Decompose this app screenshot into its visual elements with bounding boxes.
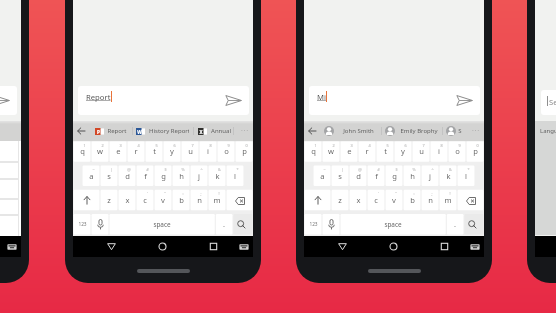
- staticText: n: [428, 195, 433, 205]
- button[interactable]: [446, 126, 456, 136]
- staticText: u: [419, 146, 424, 156]
- staticText: y: [170, 146, 174, 156]
- staticText: x: [356, 195, 361, 205]
- staticText: w: [328, 146, 334, 156]
- staticText: z: [107, 195, 111, 205]
- button[interactable]: Backspace: [235, 197, 245, 205]
- staticText: r: [134, 146, 138, 156]
- staticText: 4: [368, 143, 371, 148]
- staticText: k: [446, 171, 451, 181]
- staticText: l: [465, 171, 467, 181]
- staticText: a: [320, 171, 325, 181]
- button[interactable]: Hide keyboard: [470, 244, 480, 250]
- button[interactable]: W: [136, 128, 145, 135]
- staticText: q: [311, 146, 316, 156]
- staticText: 0: [245, 143, 248, 148]
- staticText: 6: [404, 143, 407, 148]
- staticText: ": [164, 191, 166, 196]
- button[interactable]: Backspace: [466, 197, 476, 205]
- button[interactable]: Recent apps: [440, 242, 449, 251]
- button[interactable]: Send: [0, 95, 10, 106]
- staticText: ": [395, 191, 397, 196]
- staticText: 1: [83, 143, 86, 148]
- button[interactable]: Back: [308, 127, 317, 135]
- button[interactable]: Back: [338, 243, 347, 250]
- staticText: u: [188, 146, 193, 156]
- staticText: 123: [309, 221, 318, 228]
- staticText: S: [458, 127, 462, 135]
- button[interactable]: Search: [541, 90, 556, 115]
- staticText: c: [143, 195, 147, 205]
- button[interactable]: Shift: [83, 196, 91, 205]
- staticText: :: [182, 191, 184, 196]
- button[interactable]: Hide keyboard: [7, 244, 17, 250]
- staticText: q: [80, 146, 85, 156]
- staticText: l: [234, 171, 236, 181]
- staticText: John Smith: [343, 127, 374, 135]
- staticText: Search: [549, 97, 556, 107]
- button[interactable]: Mi: [309, 86, 480, 115]
- staticText: s: [338, 171, 342, 181]
- button[interactable]: Back: [107, 243, 116, 250]
- staticText: h: [410, 171, 415, 181]
- staticText: 5: [386, 143, 389, 148]
- staticText: 123: [78, 221, 87, 228]
- staticText: c: [374, 195, 378, 205]
- button[interactable]: Report: [78, 86, 249, 115]
- staticText: P: [97, 129, 100, 135]
- staticText: #: [377, 167, 380, 172]
- button[interactable]: Voice input: [328, 219, 335, 230]
- staticText: 5: [155, 143, 158, 148]
- staticText: p: [242, 146, 247, 156]
- staticText: @: [358, 167, 362, 172]
- staticText: ~: [92, 167, 95, 172]
- button[interactable]: Home: [389, 242, 398, 251]
- staticText: ': [378, 191, 379, 196]
- button[interactable]: Hide keyboard: [239, 244, 249, 250]
- button[interactable]: [385, 126, 395, 136]
- staticText: v: [161, 195, 165, 205]
- staticText: X: [199, 129, 203, 135]
- staticText: v: [392, 195, 396, 205]
- staticText: h: [179, 171, 184, 181]
- button[interactable]: Voice input: [97, 219, 104, 230]
- staticText: space: [153, 220, 171, 229]
- button[interactable]: Shift: [314, 196, 322, 205]
- staticText: b: [410, 195, 415, 205]
- staticText: · · ·: [241, 127, 248, 134]
- staticText: x: [125, 195, 130, 205]
- button[interactable]: Send: [456, 95, 473, 106]
- staticText: t: [384, 146, 387, 156]
- button[interactable]: Recent apps: [209, 242, 218, 251]
- staticText: j: [198, 171, 200, 181]
- button[interactable]: Send: [225, 95, 242, 106]
- staticText: 1: [314, 143, 317, 148]
- staticText: 8: [209, 143, 212, 148]
- staticText: ;: [200, 191, 202, 196]
- staticText: k: [215, 171, 220, 181]
- staticText: 9: [227, 143, 230, 148]
- staticText: f: [375, 171, 378, 181]
- staticText: w: [97, 146, 103, 156]
- staticText: Report: [107, 127, 127, 135]
- button[interactable]: Send: [0, 86, 17, 115]
- staticText: |: [110, 167, 113, 172]
- staticText: 9: [458, 143, 461, 148]
- button[interactable]: Search: [468, 220, 477, 229]
- staticText: n: [197, 195, 202, 205]
- staticText: ': [147, 191, 148, 196]
- button[interactable]: [324, 126, 334, 136]
- staticText: d: [356, 171, 361, 181]
- staticText: ^: [431, 167, 434, 172]
- button[interactable]: X: [198, 128, 207, 135]
- staticText: &: [218, 167, 221, 172]
- button[interactable]: Back: [77, 127, 86, 135]
- staticText: i: [207, 146, 209, 156]
- staticText: .: [454, 219, 456, 229]
- button[interactable]: P: [95, 128, 104, 135]
- staticText: m: [444, 195, 452, 205]
- staticText: Mi: [317, 92, 326, 102]
- staticText: g: [161, 171, 166, 181]
- button[interactable]: Home: [158, 242, 167, 251]
- button[interactable]: Search: [237, 220, 246, 229]
